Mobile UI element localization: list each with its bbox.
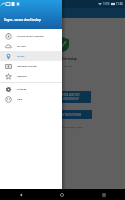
button[interactable]: My files (0, 41, 62, 51)
button[interactable]: Upgrade (0, 71, 62, 81)
button[interactable]: BACKUP PHOTOS AND GET 5 GB EXTRA FOR SIG… (35, 91, 91, 103)
staticText: Optimize storage (17, 65, 37, 68)
staticText: Make your first backup (48, 57, 77, 60)
staticText: 0.0 GB of 100 GB (53, 64, 72, 67)
staticText: Unlimited backup, including files, Stand (42, 126, 83, 129)
staticText: BACKUP ALL ON YOUR PHONE (44, 113, 82, 116)
button[interactable]: Recent apps (83, 189, 125, 200)
staticText: Status (17, 55, 25, 58)
button[interactable]: Status (0, 51, 62, 61)
staticText: Upgrade (17, 75, 27, 78)
button[interactable]: Optimize storage (0, 61, 62, 71)
button[interactable]: BACKUP ALL ON YOUR PHONE (34, 110, 92, 119)
staticText: Help (17, 98, 23, 101)
button[interactable]: Back (0, 189, 41, 200)
button[interactable]: Choose what to backup (0, 31, 62, 41)
button[interactable]: Settings (0, 84, 62, 94)
staticText: Degoo - secure cloud backup (4, 18, 41, 22)
staticText: Choose what to backup (17, 35, 44, 38)
button[interactable]: Help (0, 94, 62, 104)
staticText: 11:26 (116, 2, 123, 6)
staticText: 100% (103, 2, 110, 6)
staticText: My files (17, 45, 26, 48)
staticText: BACKUP PHOTOS AND GET 5 GB EXTRA FOR SIG… (47, 93, 80, 101)
button[interactable]: Home (41, 189, 83, 200)
staticText: Settings (17, 88, 27, 91)
